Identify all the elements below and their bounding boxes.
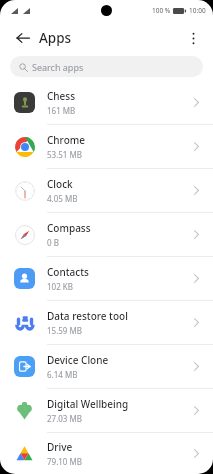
staticText: 0 B [47, 237, 59, 248]
staticText: 10:00 [189, 6, 206, 15]
button[interactable]: Data restore tool [0, 301, 213, 344]
staticText: Device Clone [47, 353, 109, 367]
button[interactable]: Compass [0, 213, 213, 256]
button[interactable]: More options [181, 26, 205, 50]
button[interactable]: Chess [0, 81, 213, 124]
staticText: 102 KB [47, 281, 73, 292]
button[interactable]: Digital Wellbeing [0, 389, 213, 432]
button[interactable]: Search apps [10, 56, 203, 77]
button[interactable]: Contacts [0, 257, 213, 300]
staticText: 53.51 MB [47, 149, 82, 160]
staticText: Chrome [47, 133, 85, 147]
staticText: Clock [47, 177, 73, 191]
staticText: 15.59 MB [47, 325, 82, 336]
staticText: 100 % [152, 6, 171, 15]
staticText: 27.03 MB [47, 413, 82, 424]
button[interactable]: Chrome [0, 125, 213, 168]
button[interactable]: Clock [0, 169, 213, 212]
staticText: Drive [47, 440, 73, 454]
staticText: Digital Wellbeing [47, 397, 129, 411]
button[interactable]: Device Clone [0, 345, 213, 388]
staticText: 4.05 MB [47, 193, 78, 204]
button[interactable]: Drive [0, 433, 213, 474]
staticText: Compass [47, 221, 91, 235]
staticText: Data restore tool [47, 309, 128, 323]
staticText: Search apps [32, 61, 84, 73]
staticText: 161 MB [47, 105, 76, 116]
staticText: 79.10 MB [47, 456, 82, 467]
staticText: 6.14 MB [47, 369, 78, 380]
staticText: Contacts [47, 265, 89, 279]
staticText: Apps [39, 29, 72, 47]
staticText: Chess [47, 89, 76, 103]
button[interactable]: Back [11, 26, 35, 50]
